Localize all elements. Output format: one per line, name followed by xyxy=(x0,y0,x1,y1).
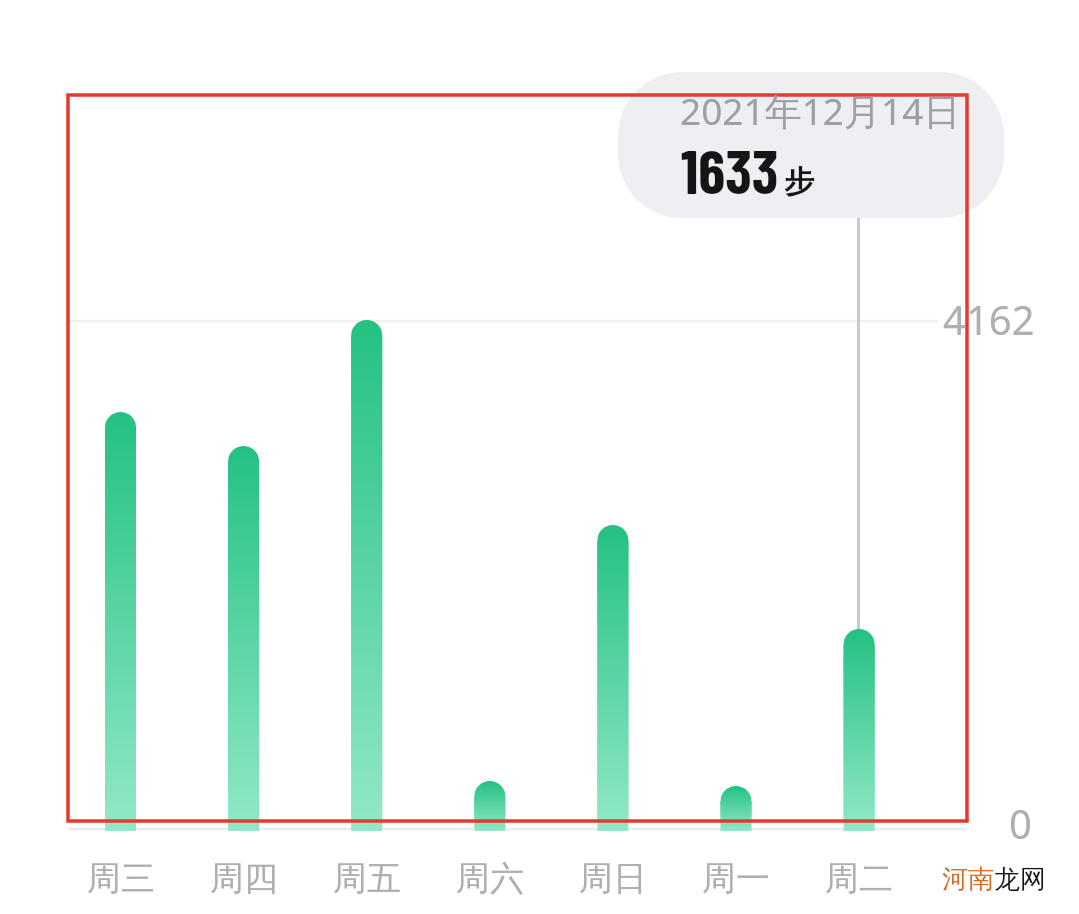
staticText: 1633 xyxy=(681,133,779,206)
staticText: 周一 xyxy=(702,857,770,900)
staticText: 4162 xyxy=(943,292,1035,346)
button[interactable] xyxy=(618,72,1004,218)
staticText: 0 xyxy=(1009,796,1032,850)
staticText: 步 xyxy=(784,163,814,201)
staticText: 周二 xyxy=(825,857,893,900)
staticText: 河南 xyxy=(942,863,994,896)
staticText: 2021年12月14日 xyxy=(680,85,961,136)
staticText: 周三 xyxy=(87,857,155,900)
staticText: 周五 xyxy=(333,857,401,900)
staticText: 周六 xyxy=(456,857,524,900)
staticText: 周四 xyxy=(210,857,278,900)
staticText: 龙网 xyxy=(994,863,1046,896)
staticText: 周日 xyxy=(579,857,647,900)
